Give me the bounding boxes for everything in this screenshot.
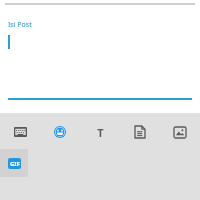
button[interactable]: Keyboard xyxy=(0,121,40,143)
button[interactable]: Document xyxy=(120,121,160,143)
button[interactable]: Text formatting xyxy=(80,121,120,143)
staticText: Isi Post xyxy=(8,20,32,30)
button[interactable]: Image xyxy=(160,121,200,143)
button[interactable]: Emoji xyxy=(40,121,80,143)
button[interactable] xyxy=(0,33,200,81)
staticText: T xyxy=(97,125,104,140)
staticText: GIF xyxy=(10,160,20,168)
button[interactable]: GIF xyxy=(0,149,28,177)
